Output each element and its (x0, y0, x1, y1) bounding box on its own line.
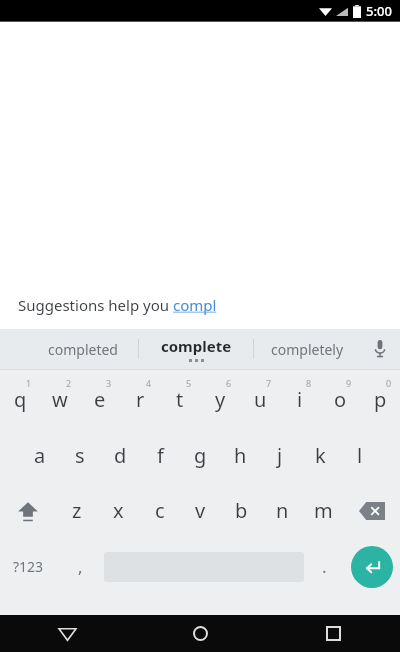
button[interactable]: 3 (80, 370, 120, 428)
staticText: u (254, 386, 267, 413)
staticText: n (276, 497, 289, 524)
staticText: d (114, 442, 127, 469)
staticText: completed (48, 340, 118, 359)
button[interactable]: 7 (240, 370, 280, 428)
staticText: Suggestions help you compl (18, 295, 217, 315)
staticText: q (14, 386, 27, 413)
button[interactable]: s (60, 428, 100, 483)
button[interactable]: 6 (200, 370, 240, 428)
button[interactable]: Shift (0, 483, 56, 538)
staticText: j (277, 442, 283, 469)
staticText: 7 (266, 377, 272, 389)
staticText: 5:00 (366, 2, 392, 20)
staticText: f (157, 442, 164, 469)
staticText: a (34, 442, 46, 469)
staticText: 0 (386, 377, 392, 389)
staticText: 5 (186, 377, 192, 389)
staticText: b (235, 497, 248, 524)
button[interactable]: 8 (280, 370, 320, 428)
button[interactable] (104, 538, 304, 595)
staticText: t (176, 386, 184, 413)
staticText: v (195, 497, 206, 524)
button[interactable]: x (98, 483, 139, 538)
staticText: h (234, 442, 247, 469)
staticText: completely (271, 340, 344, 359)
staticText: c (155, 497, 165, 524)
staticText: m (314, 497, 333, 524)
button[interactable]: Enter (344, 538, 400, 595)
staticText: 4 (146, 377, 152, 389)
staticText: k (315, 442, 326, 469)
staticText: i (297, 386, 303, 413)
button[interactable]: g (180, 428, 220, 483)
button[interactable]: Backspace (344, 483, 400, 538)
button[interactable]: h (220, 428, 260, 483)
staticText: z (72, 497, 82, 524)
button[interactable]: 4 (120, 370, 160, 428)
staticText: o (334, 386, 347, 413)
staticText: g (194, 442, 207, 469)
staticText: 6 (226, 377, 232, 389)
staticText: y (215, 386, 226, 413)
button[interactable]: . (304, 538, 344, 595)
staticText: e (94, 386, 106, 413)
button[interactable]: f (140, 428, 180, 483)
button[interactable]: n (262, 483, 303, 538)
staticText: 9 (346, 377, 352, 389)
button[interactable]: 2 (40, 370, 80, 428)
button[interactable]: Back (0, 615, 134, 652)
staticText: l (357, 442, 363, 469)
button[interactable]: v (180, 483, 221, 538)
button[interactable]: 5 (160, 370, 200, 428)
button[interactable]: c (139, 483, 180, 538)
button[interactable]: z (56, 483, 98, 538)
button[interactable]: completely (254, 329, 360, 369)
button[interactable]: Recents (267, 615, 400, 652)
button[interactable]: j (260, 428, 300, 483)
staticText: 1 (26, 377, 32, 389)
button[interactable]: Voice input (360, 329, 400, 369)
button[interactable]: l (340, 428, 380, 483)
button[interactable]: Home (134, 615, 267, 652)
staticText: w (52, 386, 68, 413)
staticText: p (374, 386, 387, 413)
staticText: r (136, 386, 145, 413)
staticText: x (113, 497, 124, 524)
button[interactable]: b (221, 483, 262, 538)
button[interactable]: m (303, 483, 344, 538)
button[interactable]: completed (28, 329, 138, 369)
staticText: 3 (106, 377, 112, 389)
button[interactable]: 0 (360, 370, 400, 428)
button[interactable]: , (56, 538, 104, 595)
button[interactable]: a (20, 428, 60, 483)
staticText: , (78, 555, 83, 578)
button[interactable]: 9 (320, 370, 360, 428)
staticText: 2 (66, 377, 72, 389)
staticText: 8 (306, 377, 312, 389)
button[interactable]: ?123 (0, 538, 56, 595)
staticText: s (75, 442, 85, 469)
button[interactable]: 1 (0, 370, 40, 428)
staticText: ?123 (13, 557, 44, 576)
staticText: . (322, 555, 327, 578)
button[interactable]: complete (139, 329, 253, 369)
button[interactable]: k (300, 428, 340, 483)
staticText: complete (161, 336, 232, 356)
button[interactable]: d (100, 428, 140, 483)
